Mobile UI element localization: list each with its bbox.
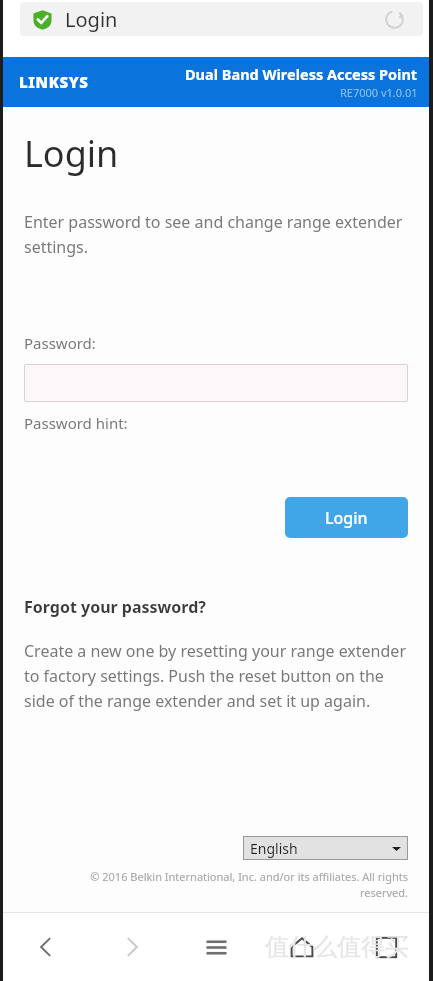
button[interactable]: Password input field bbox=[24, 364, 408, 402]
button[interactable]: Login bbox=[285, 497, 408, 538]
staticText: LINKSYS bbox=[19, 72, 89, 92]
staticText: Password: bbox=[24, 333, 96, 353]
staticText: RE7000 v1.0.01 bbox=[340, 85, 418, 100]
staticText: Login bbox=[65, 6, 118, 33]
staticText: 值什么值得买 bbox=[265, 932, 409, 962]
staticText: © 2016 Belkin International, Inc. and/or… bbox=[66, 869, 408, 900]
button[interactable]: Tabs bbox=[344, 913, 429, 981]
staticText: Login bbox=[24, 129, 119, 178]
staticText: Dual Band Wireless Access Point bbox=[185, 64, 418, 84]
staticText: Login bbox=[325, 507, 368, 529]
button[interactable]: Reload page bbox=[377, 2, 411, 36]
staticText: Create a new one by resetting your range… bbox=[24, 640, 408, 711]
button[interactable]: Back bbox=[3, 913, 89, 981]
button[interactable]: Home bbox=[259, 913, 344, 981]
button[interactable]: English bbox=[243, 836, 408, 860]
staticText: Password hint: bbox=[24, 413, 128, 433]
staticText: Enter password to see and change range e… bbox=[24, 211, 408, 257]
staticText: English bbox=[250, 839, 392, 858]
button[interactable]: Menu bbox=[174, 913, 259, 981]
button[interactable]: Forgot your password? bbox=[24, 596, 206, 618]
button[interactable]: Login bbox=[20, 2, 423, 36]
button[interactable]: Forward bbox=[89, 913, 174, 981]
